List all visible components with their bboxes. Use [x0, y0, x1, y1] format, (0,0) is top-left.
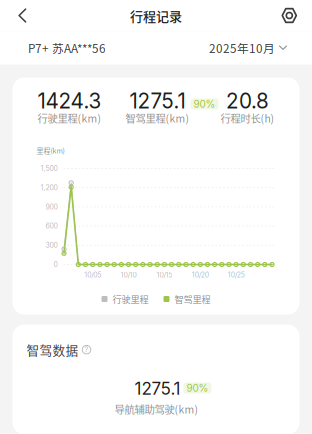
staticText: 智驾里程(km): [125, 110, 189, 126]
staticText: ?: [84, 345, 88, 354]
staticText: 里程(km): [36, 145, 64, 155]
button[interactable]: Info: [81, 345, 91, 355]
staticText: 90%: [186, 382, 208, 394]
staticText: 行驶里程: [112, 292, 148, 306]
staticText: 行程时长(h): [220, 110, 274, 126]
staticText: 1,500: [40, 164, 57, 173]
staticText: 90%: [193, 98, 215, 110]
staticText: 10/15: [156, 271, 172, 279]
staticText: 2025年10月: [209, 39, 275, 56]
staticText: 10/20: [192, 271, 209, 279]
staticText: 智驾数据: [26, 340, 78, 359]
staticText: 900: [45, 203, 57, 211]
staticText: 行程记录: [130, 6, 182, 25]
staticText: 1424.3: [37, 88, 101, 113]
button[interactable]: Settings: [269, 0, 312, 31]
staticText: 导航辅助驾驶(km): [114, 401, 198, 417]
staticText: 600: [45, 222, 57, 230]
staticText: 10/10: [121, 271, 137, 279]
button[interactable]: Back: [0, 0, 40, 31]
staticText: 10/25: [228, 271, 245, 279]
staticText: 20.8: [226, 88, 269, 113]
staticText: 0: [53, 260, 57, 269]
staticText: 智驾里程: [174, 292, 210, 306]
staticText: 300: [45, 241, 57, 249]
staticText: 1,200: [40, 183, 57, 192]
staticText: P7+ 苏AA***56: [28, 39, 106, 56]
staticText: 行驶里程(km): [37, 110, 101, 126]
staticText: 1275.1: [134, 378, 180, 399]
staticText: 10/05: [84, 271, 101, 279]
button[interactable]: 2025年10月: [209, 31, 287, 64]
staticText: 1275.1: [129, 88, 185, 113]
